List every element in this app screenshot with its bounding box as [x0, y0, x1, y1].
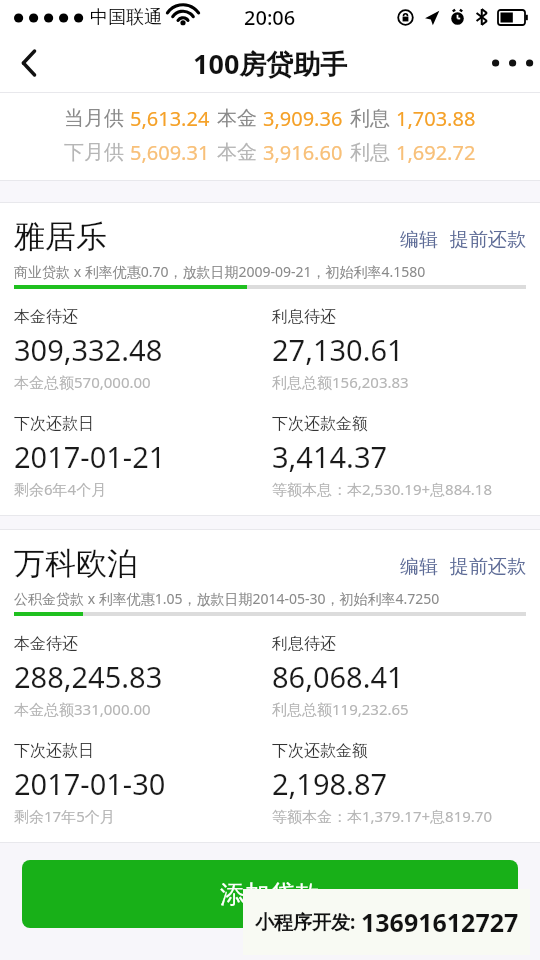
staticText: 提前还款 [450, 228, 526, 252]
button[interactable]: 提前还款 [450, 555, 526, 583]
staticText: 添加贷款 [220, 879, 320, 910]
staticText: 本金 [217, 140, 257, 165]
staticText: 小程序开发: [255, 909, 361, 935]
staticText: 本金待还 [14, 307, 78, 327]
staticText: 雅居乐 [14, 217, 107, 256]
staticText: 编辑 [400, 228, 438, 252]
button[interactable]: 编辑 [400, 555, 438, 583]
staticText: 27,130.61 [272, 330, 404, 369]
staticText: 1,692.72 [396, 139, 476, 166]
staticText: 本金 [217, 106, 257, 131]
staticText: 下次还款金额 [272, 741, 368, 761]
staticText: 86,068.41 [272, 657, 404, 696]
staticText: 万科欧泊 [14, 544, 138, 583]
staticText: 利息待还 [272, 307, 336, 327]
staticText: 编辑 [400, 555, 438, 579]
staticText: 下次还款日 [14, 741, 94, 761]
staticText: 下次还款日 [14, 414, 94, 434]
staticText: 利息 [350, 140, 390, 165]
staticText: 下月供 [64, 140, 124, 165]
staticText: 3,909.36 [263, 105, 343, 132]
staticText: 公积金贷款 x 利率优惠1.05，放款日期2014-05-30，初始利率4.72… [14, 589, 440, 608]
button[interactable]: 雅居乐 [0, 203, 540, 515]
button[interactable]: 提前还款 [450, 228, 526, 256]
staticText: 等额本金：本1,379.17+息819.70 [272, 806, 493, 826]
staticText: 等额本息：本2,530.19+息884.18 [272, 479, 493, 499]
staticText: 利息待还 [272, 634, 336, 654]
button[interactable]: More options [482, 34, 540, 92]
staticText: 利息总额156,203.83 [272, 372, 409, 392]
staticText: 13691612727 [361, 905, 519, 939]
staticText: 提前还款 [450, 555, 526, 579]
staticText: 当月供 [64, 106, 124, 131]
staticText: 利息总额119,232.65 [272, 699, 409, 719]
staticText: 剩余6年4个月 [14, 479, 107, 499]
staticText: 本金总额331,000.00 [14, 699, 151, 719]
staticText: 309,332.48 [14, 330, 163, 369]
staticText: 288,245.83 [14, 657, 163, 696]
button[interactable]: 万科欧泊 [0, 530, 540, 842]
staticText: 商业贷款 x 利率优惠0.70，放款日期2009-09-21，初始利率4.158… [14, 262, 426, 281]
staticText: 5,613.24 [130, 105, 210, 132]
staticText: 20:06 [244, 4, 296, 31]
staticText: 2,198.87 [272, 764, 388, 803]
staticText: 2017-01-30 [14, 764, 166, 803]
button[interactable]: Back [0, 34, 58, 92]
staticText: 2017-01-21 [14, 437, 166, 476]
staticText: 剩余17年5个月 [14, 806, 115, 826]
staticText: 本金待还 [14, 634, 78, 654]
staticText: 3,414.37 [272, 437, 388, 476]
staticText: 本金总额570,000.00 [14, 372, 151, 392]
staticText: 100房贷助手 [193, 45, 348, 82]
staticText: 中国联通 [90, 6, 162, 29]
staticText: 1,703.88 [396, 105, 476, 132]
staticText: 5,609.31 [130, 139, 210, 166]
button[interactable]: 小程序开发: [243, 889, 530, 955]
button[interactable]: 编辑 [400, 228, 438, 256]
staticText: 利息 [350, 106, 390, 131]
staticText: 3,916.60 [263, 139, 343, 166]
button[interactable]: 添加贷款 [22, 860, 518, 928]
staticText: 下次还款金额 [272, 414, 368, 434]
